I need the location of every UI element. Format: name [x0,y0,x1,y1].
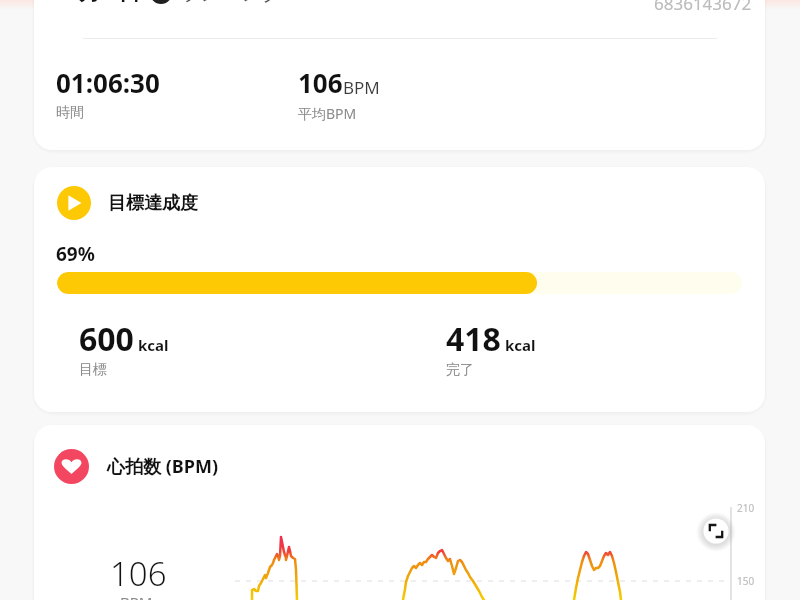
staticText: BPM [120,592,153,600]
staticText: 時間 [56,104,84,122]
staticText: kcal [505,335,536,355]
staticText: BPM [343,76,380,99]
staticText: 106 [298,65,343,100]
staticText: 平均BPM [298,104,357,123]
button[interactable]: Expand chart [698,513,734,549]
staticText: kcal [138,335,169,355]
staticText: 210 [737,501,755,515]
staticText: 11月 [54,0,102,6]
staticText: ランニング [180,0,283,6]
staticText: 600 [79,317,134,361]
staticText: 目標達成度 [108,192,198,215]
button[interactable]: 目標達成度 [57,186,198,220]
staticText: 106 [110,551,167,596]
staticText: 01:06:30 [56,65,160,100]
button[interactable]: 心拍数 (BPM) [54,449,219,484]
staticText: 5日 [106,0,141,6]
staticText: 目標 [79,361,107,379]
staticText: 6836143672 [654,0,752,15]
staticText: 完了 [446,361,474,379]
staticText: 心拍数 (BPM) [107,454,219,479]
staticText: 418 [446,317,501,361]
staticText: 69% [56,241,95,267]
staticText: 150 [737,574,755,588]
